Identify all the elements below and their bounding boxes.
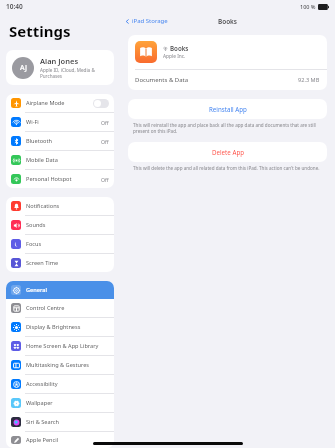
button[interactable]: Wallpaper — [6, 394, 114, 412]
button[interactable]: Reinstall App — [128, 99, 327, 119]
staticText: Settings — [9, 21, 71, 41]
button[interactable]: Focus — [6, 235, 114, 253]
staticText: 100 % — [300, 3, 316, 10]
button[interactable]: Mobile Data — [6, 151, 114, 169]
button[interactable]: Display & Brightness — [6, 318, 114, 336]
staticText: Reinstall App — [209, 105, 247, 113]
button[interactable]: Bluetooth — [6, 132, 114, 150]
staticText: Focus — [26, 240, 42, 248]
staticText: Home Screen & App Library — [26, 342, 99, 350]
button[interactable]: Personal Hotspot — [6, 170, 114, 188]
button[interactable]: Delete App — [128, 142, 327, 162]
staticText: Personal Hotspot — [26, 175, 72, 183]
button[interactable]: Control Centre — [6, 299, 114, 317]
staticText: Mobile Data — [26, 156, 58, 164]
staticText: Off — [101, 176, 109, 183]
staticText: Wallpaper — [26, 399, 53, 407]
staticText: iPad Storage — [132, 17, 168, 25]
staticText: Apple Inc. — [163, 53, 186, 60]
staticText: Airplane Mode — [26, 99, 65, 107]
staticText: Apple Pencil — [26, 436, 59, 444]
staticText: Bluetooth — [26, 137, 52, 145]
button[interactable]: Accessibility — [6, 375, 114, 393]
staticText: Off — [101, 138, 109, 145]
staticText: Books — [170, 44, 189, 52]
staticText: This will delete the app and all related… — [133, 165, 320, 171]
button[interactable]: Sounds — [6, 216, 114, 234]
staticText: General — [26, 286, 47, 294]
staticText: Documents & Data — [135, 76, 189, 84]
button[interactable]: Apple Pencil — [6, 432, 114, 448]
button[interactable]: Wi-Fi — [6, 113, 114, 131]
staticText: Books — [218, 17, 238, 26]
staticText: Wi-Fi — [26, 118, 39, 126]
button[interactable]: Home Screen & App Library — [6, 337, 114, 355]
button[interactable]: Siri & Search — [6, 413, 114, 431]
staticText: Screen Time — [26, 259, 59, 267]
staticText: Alan Jones — [40, 56, 79, 66]
button[interactable]: Documents & Data — [128, 70, 327, 90]
button[interactable]: Books — [128, 35, 327, 69]
button[interactable]: Multitasking & Gestures — [6, 356, 114, 374]
staticText: Multitasking & Gestures — [26, 361, 90, 369]
staticText: 92.3 MB — [298, 76, 320, 84]
staticText: Accessibility — [26, 380, 58, 388]
button[interactable]: Airplane Mode — [6, 94, 114, 112]
staticText: Control Centre — [26, 304, 65, 312]
staticText: Siri & Search — [26, 418, 59, 426]
staticText: Notifications — [26, 202, 60, 210]
staticText: Display & Brightness — [26, 323, 81, 331]
staticText: 10:40 — [6, 2, 23, 11]
staticText: This will reinstall the app and place ba… — [133, 122, 322, 134]
button[interactable]: iPad Storage — [125, 17, 168, 25]
staticText: Apple ID, iCloud, Media & Purchases — [40, 67, 108, 79]
button[interactable]: General — [6, 281, 114, 299]
staticText: Sounds — [26, 221, 46, 229]
button[interactable]: AJ — [6, 50, 114, 85]
button[interactable]: Screen Time — [6, 254, 114, 272]
button[interactable]: Notifications — [6, 197, 114, 215]
staticText: Delete App — [212, 148, 244, 156]
staticText: AJ — [20, 63, 27, 73]
staticText: Off — [101, 119, 109, 126]
